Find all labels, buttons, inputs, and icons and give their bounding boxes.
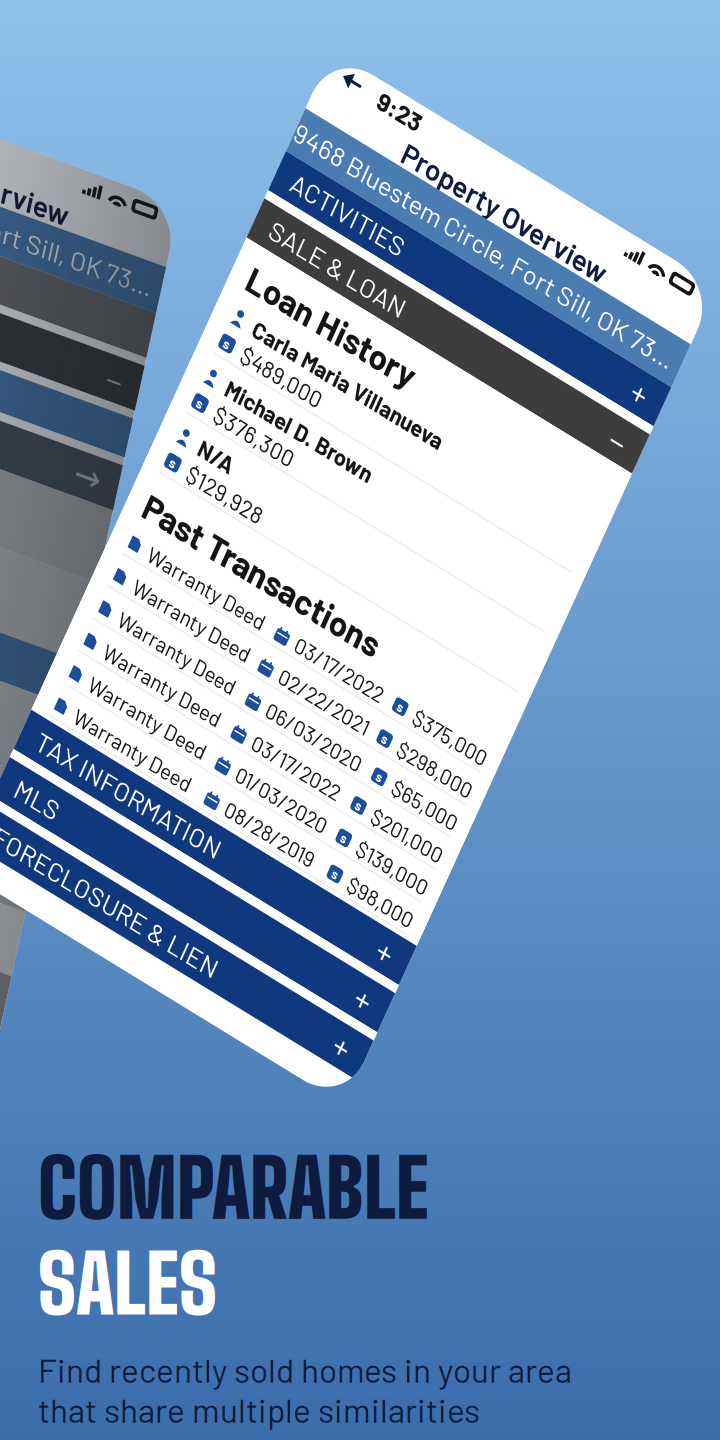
staticText: 9468 Bluestem Circle, Fort Sill, OK 7350… <box>332 121 720 153</box>
staticText: 02/22/2021 <box>545 601 649 627</box>
staticText: Warranty Deed <box>374 601 510 627</box>
staticText: s <box>355 349 362 365</box>
staticText: $376,300 <box>376 409 468 436</box>
staticText: MLS <box>350 832 400 864</box>
staticText: Warranty Deed <box>374 708 510 733</box>
staticText: TAX INFORMATION <box>350 780 564 812</box>
staticText: Loan History <box>350 267 544 309</box>
staticText: that share multiple similarities <box>38 1389 480 1429</box>
staticText: Warranty Deed <box>374 637 510 662</box>
staticText: COMPARABLE <box>38 1140 429 1236</box>
staticText: Carla Maria Villanueva <box>376 316 597 343</box>
staticText: SALES <box>38 1236 217 1332</box>
staticText: 03/17/2022 <box>546 565 648 591</box>
staticText: Past Transactions <box>350 517 624 558</box>
staticText: 12 COMPARABLES FOUND <box>0 525 69 557</box>
staticText: $129,928 <box>376 475 463 502</box>
staticText: Warranty Deed <box>374 672 510 698</box>
staticText: Michael D. Brown <box>376 381 546 408</box>
staticText: ACTIVITIES <box>350 166 481 198</box>
staticText: N/A <box>376 446 415 474</box>
staticText: 06/03/2020 <box>547 637 657 662</box>
staticText: $489,000 <box>376 344 469 371</box>
staticText: Warranty Deed <box>374 743 510 769</box>
staticText: Find recently sold homes in your area <box>38 1349 572 1389</box>
staticText: Warranty Deed <box>374 565 510 591</box>
staticText: FORECLOSURE & LIEN <box>350 884 611 916</box>
staticText: SALE & LOAN <box>350 218 507 250</box>
staticText: 9468 Bluestem Circle, Fort Sill, OK 7350… <box>0 121 207 153</box>
